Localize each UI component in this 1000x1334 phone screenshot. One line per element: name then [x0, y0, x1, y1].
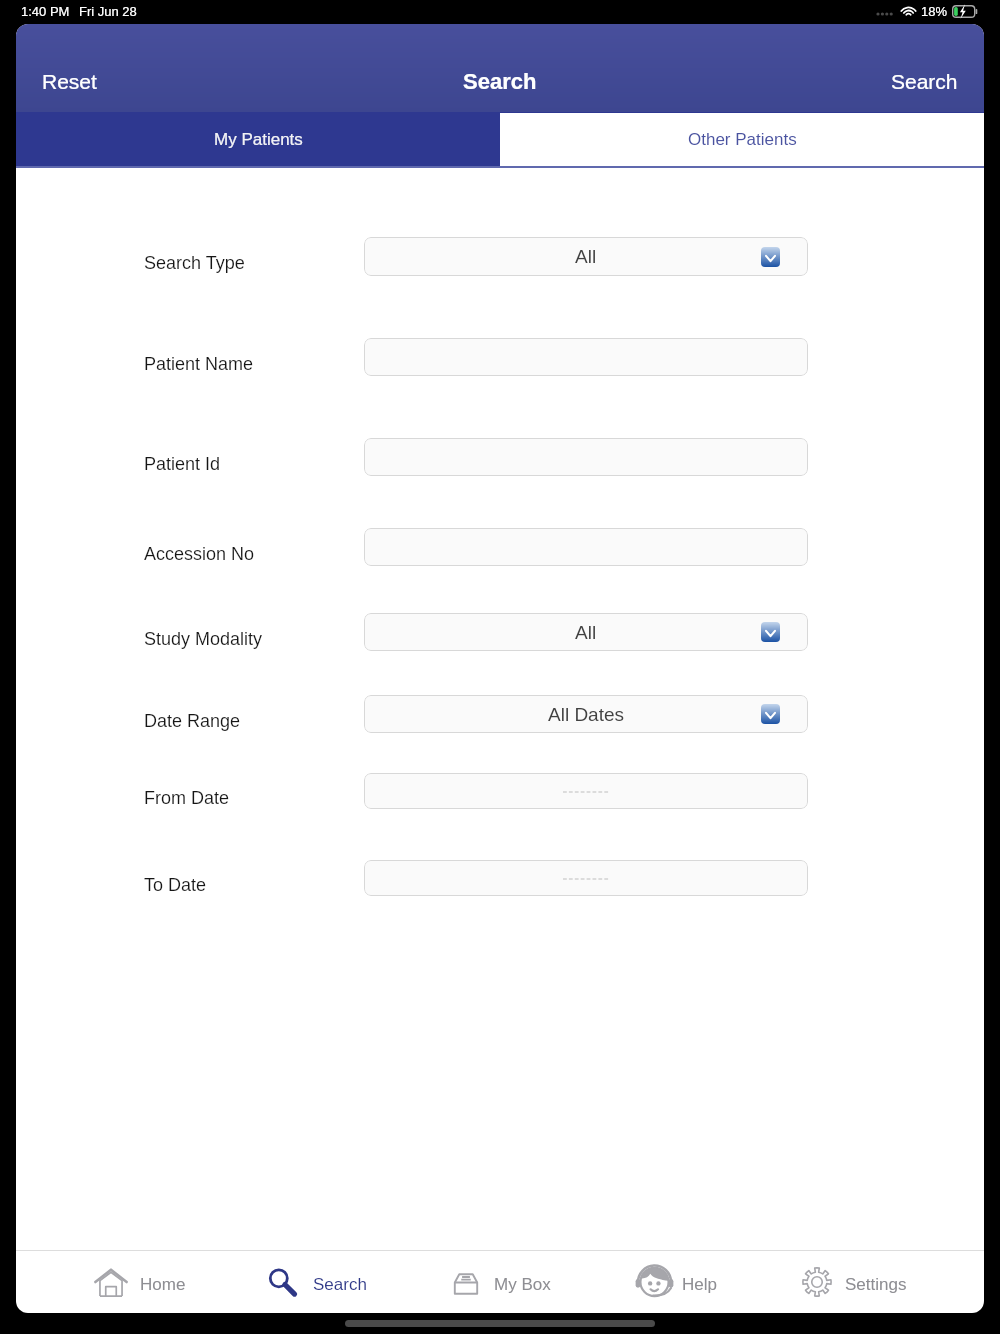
- staticText: My Box: [494, 1275, 551, 1294]
- button[interactable]: Search: [873, 66, 984, 99]
- button[interactable]: Patient Name: [144, 354, 254, 374]
- button[interactable]: [364, 338, 808, 376]
- staticText: Search Type: [144, 253, 245, 273]
- button[interactable]: [364, 438, 808, 476]
- staticText: Search: [313, 1275, 367, 1294]
- button[interactable]: Help: [636, 1251, 717, 1313]
- button[interactable]: Open Search Type options: [761, 247, 780, 267]
- staticText: All: [575, 246, 597, 267]
- button[interactable]: From Date: [144, 788, 230, 808]
- staticText: Home: [140, 1275, 186, 1294]
- button[interactable]: [364, 860, 808, 896]
- button[interactable]: All Dates: [364, 695, 808, 733]
- button[interactable]: Study Modality: [144, 629, 263, 649]
- staticText: Search: [463, 69, 537, 94]
- staticText: Accession No: [144, 544, 255, 564]
- button[interactable]: Search: [271, 1251, 367, 1313]
- button[interactable]: [364, 773, 808, 809]
- staticText: Help: [682, 1275, 717, 1294]
- button[interactable]: Accession No: [144, 544, 255, 564]
- button[interactable]: Date Range: [144, 711, 241, 731]
- button[interactable]: Patient Id: [144, 454, 221, 474]
- staticText: All: [575, 622, 597, 643]
- staticText: Settings: [845, 1275, 907, 1294]
- staticText: All Dates: [548, 704, 625, 725]
- staticText: 1:40 PM: [21, 4, 70, 19]
- staticText: Search: [891, 70, 958, 93]
- staticText: To Date: [144, 875, 207, 895]
- button[interactable]: Reset: [16, 66, 115, 99]
- staticText: Reset: [42, 70, 97, 93]
- staticText: Other Patients: [688, 130, 797, 149]
- staticText: Patient Name: [144, 354, 254, 374]
- button[interactable]: Settings: [802, 1251, 907, 1313]
- button[interactable]: My Patients: [16, 112, 500, 167]
- button[interactable]: Open Date Range options: [761, 704, 780, 724]
- staticText: My Patients: [214, 130, 303, 149]
- staticText: Fri Jun 28: [79, 4, 137, 19]
- staticText: From Date: [144, 788, 230, 808]
- staticText: 18%: [921, 4, 948, 19]
- button[interactable]: My Box: [452, 1251, 551, 1313]
- staticText: Date Range: [144, 711, 241, 731]
- button[interactable]: Open Study Modality options: [761, 622, 780, 642]
- button[interactable]: To Date: [144, 875, 207, 895]
- staticText: Patient Id: [144, 454, 221, 474]
- button[interactable]: All: [364, 613, 808, 651]
- button[interactable]: Home: [94, 1251, 186, 1313]
- button[interactable]: All: [364, 237, 808, 276]
- button[interactable]: [364, 528, 808, 566]
- staticText: Study Modality: [144, 629, 263, 649]
- button[interactable]: Other Patients: [500, 112, 984, 167]
- button[interactable]: Search Type: [144, 253, 245, 273]
